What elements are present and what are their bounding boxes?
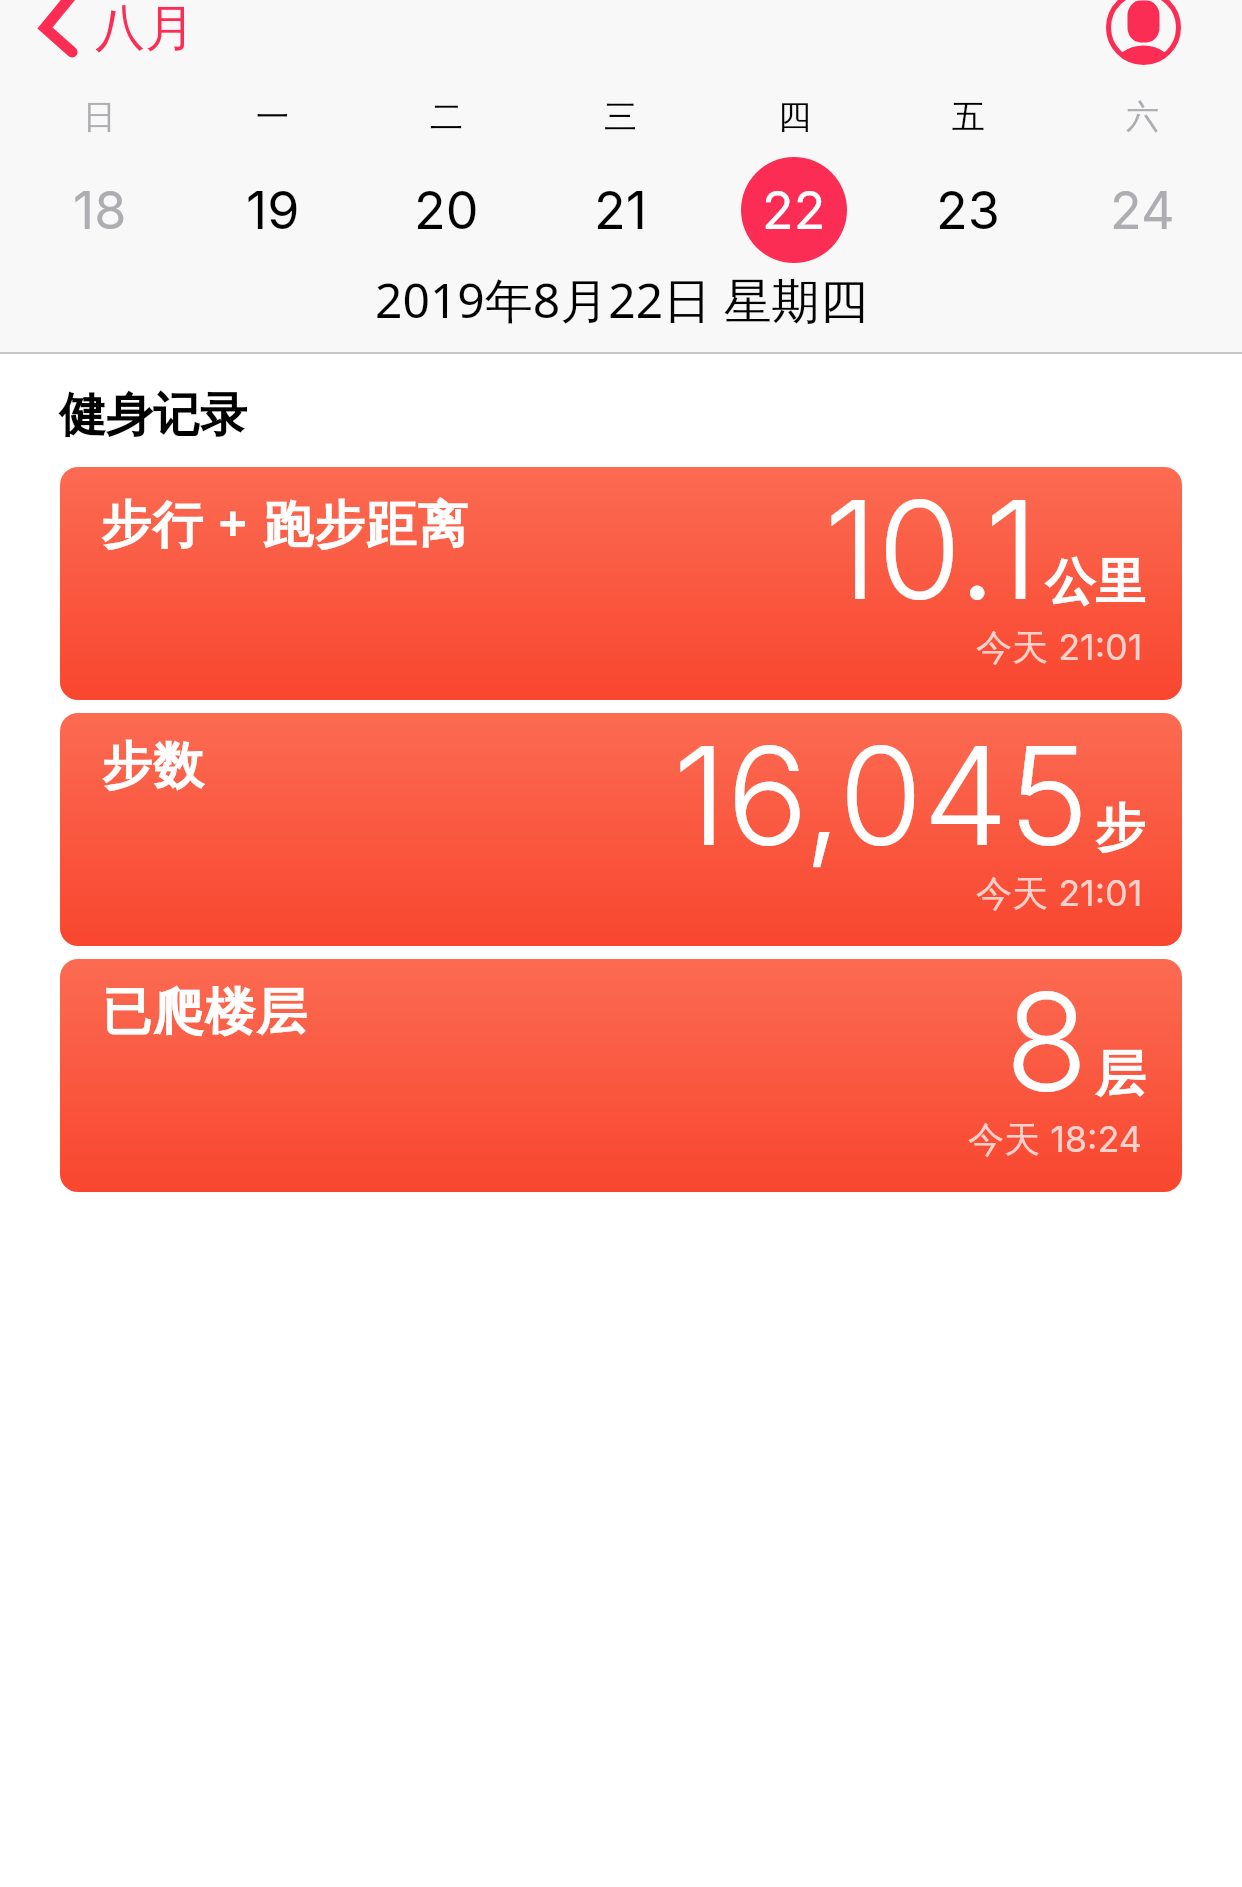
button[interactable]: 三 <box>533 86 707 263</box>
staticText: 23 <box>936 179 1000 242</box>
staticText: 今天 21:01 <box>976 871 1143 917</box>
staticText: 八月 <box>95 0 195 60</box>
staticText: 18 <box>73 179 127 242</box>
staticText: 步数 <box>101 735 204 798</box>
staticText: 层 <box>1095 1043 1145 1106</box>
staticText: 三 <box>604 96 637 138</box>
staticText: 六 <box>1126 96 1159 138</box>
staticText: 20 <box>414 179 479 242</box>
button[interactable]: 步数 <box>60 713 1182 946</box>
staticText: 四 <box>778 96 811 138</box>
button[interactable]: 五 <box>881 86 1055 263</box>
staticText: 22 <box>762 179 826 242</box>
staticText: 一 <box>256 96 289 138</box>
staticText: 五 <box>952 96 985 138</box>
button[interactable]: 步行 + 跑步距离 <box>60 467 1182 700</box>
button[interactable]: 已爬楼层 <box>60 959 1182 1192</box>
staticText: 已爬楼层 <box>101 981 307 1044</box>
staticText: 24 <box>1110 179 1175 242</box>
staticText: 日 <box>83 96 116 138</box>
staticText: 健身记录 <box>59 386 247 445</box>
staticText: 二 <box>430 96 463 138</box>
staticText: 2019年8月22日 星期四 <box>375 267 868 333</box>
button[interactable] <box>1106 0 1181 65</box>
staticText: 今天 18:24 <box>968 1117 1143 1163</box>
button[interactable]: 八月 <box>32 0 195 64</box>
button[interactable]: 六 <box>1055 86 1229 263</box>
button[interactable]: 日 <box>13 86 186 263</box>
staticText: 21 <box>594 179 647 242</box>
button[interactable]: 二 <box>359 86 533 263</box>
button[interactable]: 四 <box>707 86 881 263</box>
button[interactable]: 一 <box>186 86 359 263</box>
staticText: 公里 <box>1045 551 1145 614</box>
staticText: 16,045 <box>673 713 1089 878</box>
staticText: 步 <box>1095 797 1145 860</box>
staticText: 步行 + 跑步距离 <box>101 489 470 557</box>
staticText: 10.1 <box>824 467 1039 632</box>
staticText: 19 <box>246 179 300 242</box>
staticText: 8 <box>1005 959 1089 1124</box>
staticText: 今天 21:01 <box>976 625 1143 671</box>
